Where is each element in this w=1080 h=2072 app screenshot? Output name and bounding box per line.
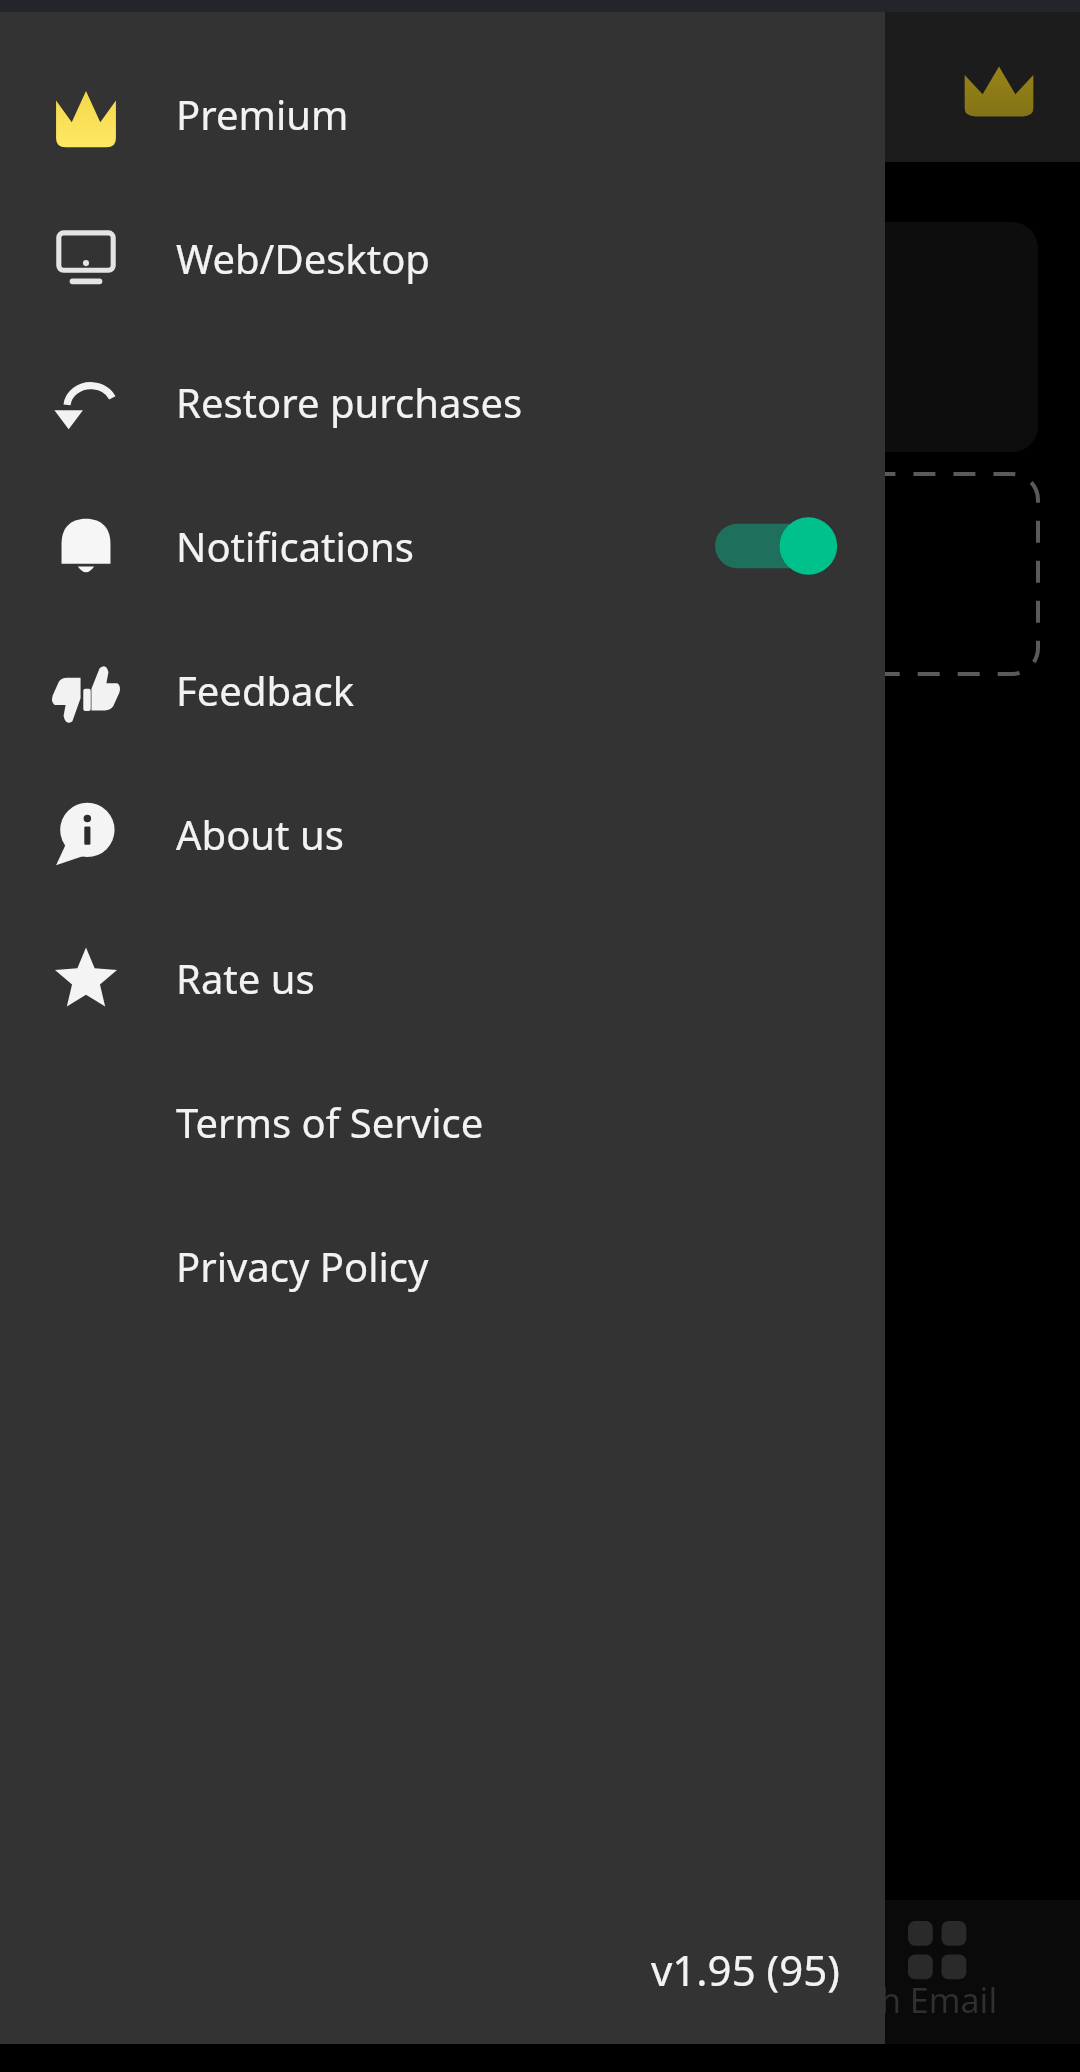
staticText: About us: [176, 807, 855, 861]
staticText: Notifications: [176, 519, 715, 573]
button[interactable]: Web/Desktop: [0, 186, 885, 330]
staticText: Restore purchases: [176, 375, 855, 429]
staticText: Terms of Service: [176, 1095, 855, 1149]
staticText: Privacy Policy: [176, 1239, 855, 1293]
staticText: v1.95 (95): [651, 1941, 840, 1998]
button[interactable]: Notifications: [0, 474, 885, 618]
button[interactable]: Privacy Policy: [0, 1194, 885, 1338]
button[interactable]: Notifications toggle: [715, 510, 855, 582]
button[interactable]: Rate us: [0, 906, 885, 1050]
staticText: Feedback: [176, 663, 855, 717]
button[interactable]: Terms of Service: [0, 1050, 885, 1194]
staticText: Premium: [176, 87, 855, 141]
staticText: Rate us: [176, 951, 855, 1005]
button[interactable]: Premium: [0, 42, 885, 186]
button[interactable]: Feedback: [0, 618, 885, 762]
staticText: h Email: [880, 1977, 998, 2023]
staticText: Web/Desktop: [176, 231, 855, 285]
button[interactable]: About us: [0, 762, 885, 906]
button[interactable]: Restore purchases: [0, 330, 885, 474]
